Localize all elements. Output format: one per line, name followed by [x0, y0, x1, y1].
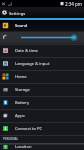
- staticText: Settings: [9, 10, 26, 16]
- staticText: Location: [15, 144, 32, 150]
- staticText: Sound: [15, 23, 28, 29]
- button[interactable]: Storage: [0, 83, 84, 96]
- staticText: Battery: [15, 100, 30, 106]
- button[interactable]: Home: [0, 70, 84, 83]
- button[interactable]: Apps: [0, 109, 84, 122]
- button[interactable]: Location: [0, 144, 84, 150]
- staticText: Apps: [15, 113, 25, 119]
- other: Settings: [2, 10, 7, 15]
- button[interactable]: Settings: [0, 7, 84, 18]
- button[interactable]: Battery: [0, 96, 84, 109]
- button[interactable]: Language & input: [0, 57, 84, 70]
- staticText: 2:34 pm: [65, 1, 83, 7]
- button[interactable]: Connect to PC: [0, 122, 84, 135]
- staticText: Date & time: [15, 48, 38, 54]
- button[interactable]: Call volume: [0, 31, 84, 44]
- staticText: Language & input: [15, 61, 50, 67]
- button[interactable]: Sound: [0, 20, 84, 31]
- staticText: Connect to PC: [15, 126, 43, 132]
- staticText: PERSONAL: [3, 137, 19, 141]
- button[interactable]: Date & time: [0, 44, 84, 57]
- staticText: Storage: [15, 87, 30, 93]
- staticText: Home: [15, 74, 27, 80]
- other: Call volume: [2, 34, 9, 41]
